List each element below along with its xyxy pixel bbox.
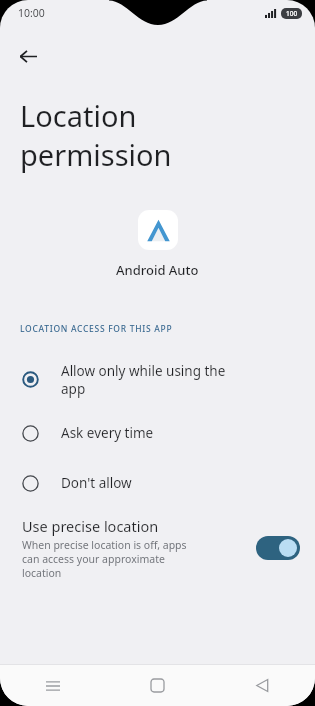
staticText: permission bbox=[20, 135, 172, 174]
staticText: LOCATION ACCESS FOR THIS APP bbox=[20, 323, 173, 335]
staticText: Location bbox=[20, 96, 137, 135]
staticText: Use precise location bbox=[22, 516, 159, 536]
staticText: Ask every time bbox=[61, 424, 154, 442]
button[interactable]: Home bbox=[105, 665, 210, 706]
staticText: Don't allow bbox=[61, 474, 132, 492]
staticText: Android Auto bbox=[116, 261, 199, 279]
staticText: Allow only while using the app bbox=[61, 362, 226, 398]
button[interactable]: Use precise location bbox=[0, 516, 315, 580]
button[interactable]: Back bbox=[8, 36, 48, 76]
button[interactable]: Allow only while using the app bbox=[0, 351, 315, 408]
button[interactable]: Recent apps bbox=[0, 665, 105, 706]
staticText: When precise location is off, apps can a… bbox=[22, 538, 187, 580]
staticText: 100 bbox=[286, 9, 298, 18]
button[interactable]: Back bbox=[210, 665, 315, 706]
button[interactable]: Ask every time bbox=[0, 408, 315, 458]
staticText: 10:00 bbox=[18, 6, 45, 20]
button[interactable]: Use precise location bbox=[256, 536, 300, 560]
button[interactable]: Don't allow bbox=[0, 458, 315, 508]
